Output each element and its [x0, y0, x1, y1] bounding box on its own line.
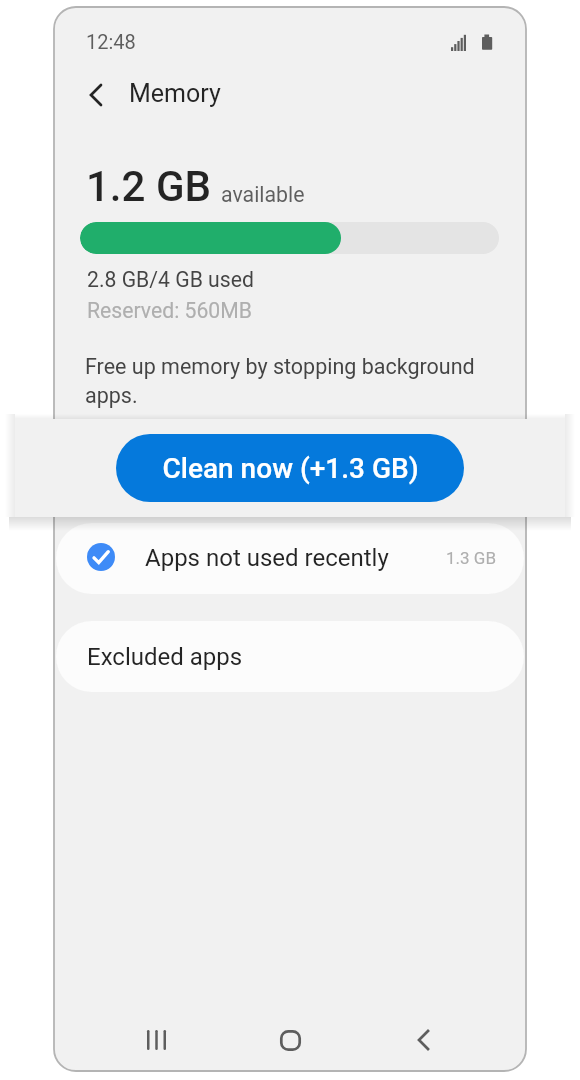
button[interactable]: Apps not used recently: [56, 523, 524, 594]
button[interactable]: Back: [71, 70, 121, 120]
staticText: Excluded apps: [87, 643, 243, 671]
staticText: Reserved: 560MB: [87, 298, 252, 323]
staticText: Memory: [129, 79, 221, 108]
staticText: 2.8 GB/4 GB used: [87, 267, 254, 292]
staticText: Clean now (+1.3 GB): [162, 452, 419, 485]
staticText: 1.3 GB: [446, 548, 496, 568]
staticText: Free up memory by stopping background ap…: [85, 354, 475, 408]
button[interactable]: Clean now (+1.3 GB): [116, 434, 464, 502]
other: Battery: [482, 34, 494, 52]
staticText: 12:48: [86, 30, 136, 53]
button[interactable]: Back: [398, 1015, 448, 1065]
staticText: available: [221, 182, 305, 207]
button[interactable]: Home: [265, 1015, 315, 1065]
staticText: 1.2 GB: [86, 162, 212, 211]
button[interactable]: Excluded apps: [56, 621, 524, 692]
other: Signal strength: [451, 34, 467, 51]
staticText: Apps not used recently: [145, 544, 389, 572]
button[interactable]: Recent apps: [131, 1015, 181, 1065]
